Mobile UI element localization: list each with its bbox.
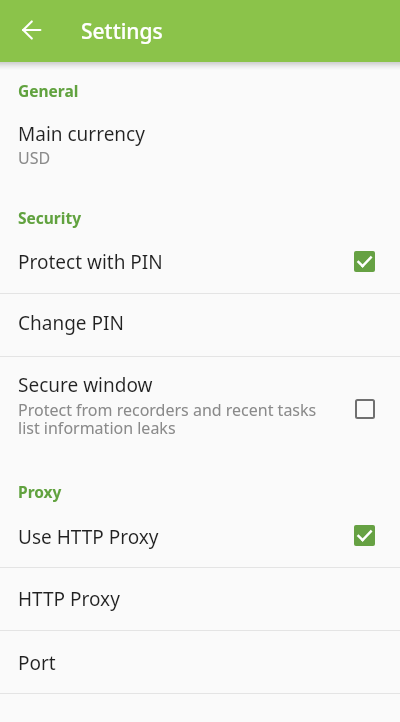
button[interactable]: Port [0,631,400,693]
button[interactable]: Change PIN [0,294,400,356]
staticText: Port [18,650,56,676]
button[interactable]: Checked [354,251,375,272]
button[interactable]: Main currency [0,101,400,169]
staticText: HTTP Proxy [18,586,120,612]
staticText: General [18,80,79,101]
staticText: Secure window [18,372,153,398]
staticText: Protect with PIN [18,249,163,275]
staticText: Use HTTP Proxy [18,524,159,550]
staticText: USD [18,147,51,169]
button[interactable]: Checked [354,525,375,546]
staticText: Main currency [18,121,145,147]
staticText: Change PIN [18,310,124,336]
staticText: Proxy [18,481,62,502]
button[interactable]: Navigate up [10,9,52,51]
button[interactable]: Secure window [0,357,400,438]
button[interactable]: Unchecked [354,398,375,419]
staticText: Security [18,207,82,228]
button[interactable]: HTTP Proxy [0,568,400,630]
staticText: Settings [81,17,163,46]
button[interactable]: Use HTTP Proxy [0,502,400,567]
button[interactable]: Protect with PIN [0,228,400,293]
staticText: Protect from recorders and recent tasks … [18,399,318,439]
